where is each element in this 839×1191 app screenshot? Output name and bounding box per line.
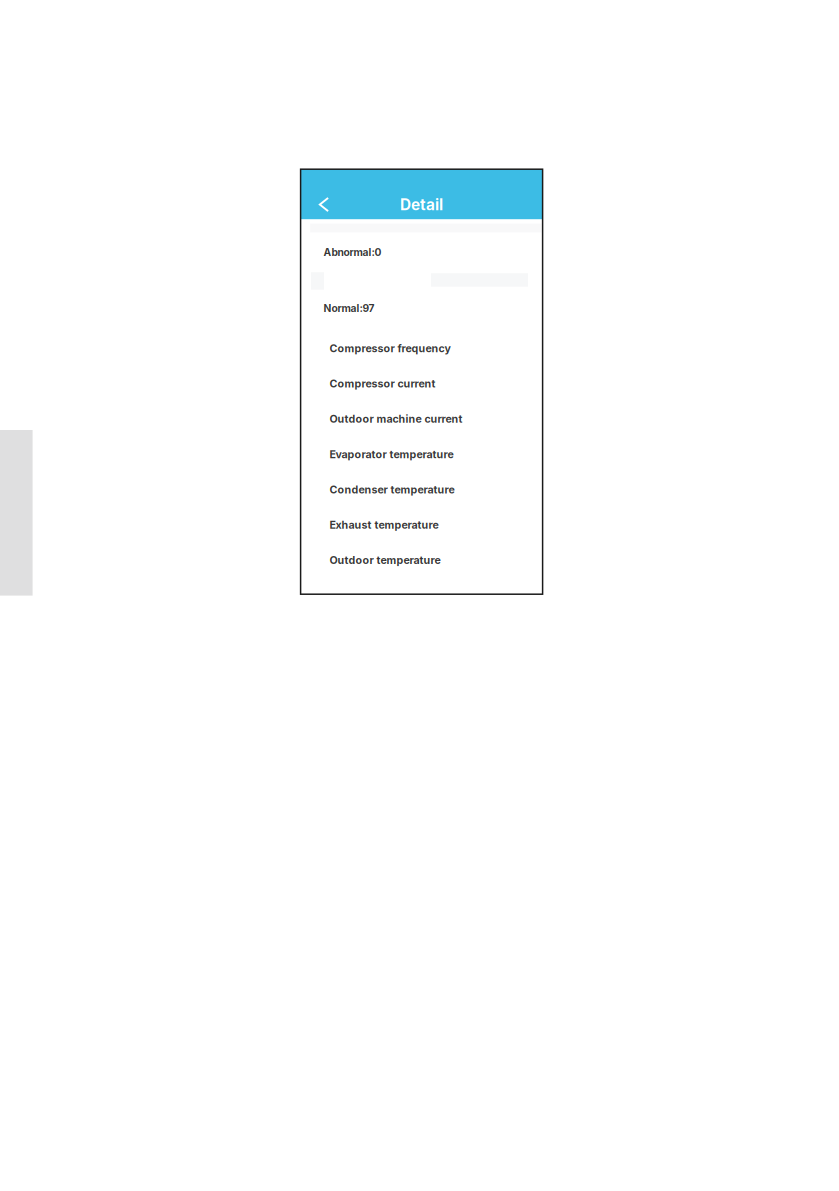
button[interactable]: Outdoor temperature — [301, 542, 543, 578]
staticText: Compressor frequency — [330, 342, 451, 355]
button[interactable]: Evaporator temperature — [301, 437, 543, 472]
staticText: Outdoor temperature — [330, 554, 441, 567]
button[interactable]: Exhaust temperature — [301, 507, 543, 542]
staticText: Compressor current — [330, 377, 436, 390]
button[interactable]: Condenser temperature — [301, 472, 543, 507]
staticText: Exhaust temperature — [330, 518, 439, 531]
staticText: Outdoor machine current — [330, 412, 463, 425]
staticText: Detail — [400, 195, 443, 214]
button[interactable]: Back — [301, 190, 349, 219]
button[interactable]: Compressor frequency — [301, 331, 543, 366]
staticText: Normal:97 — [324, 302, 375, 314]
staticText: Evaporator temperature — [330, 448, 454, 461]
button[interactable]: Outdoor machine current — [301, 401, 543, 437]
button[interactable]: Compressor current — [301, 366, 543, 401]
staticText: Abnormal:0 — [324, 246, 382, 258]
staticText: Condenser temperature — [330, 483, 455, 496]
